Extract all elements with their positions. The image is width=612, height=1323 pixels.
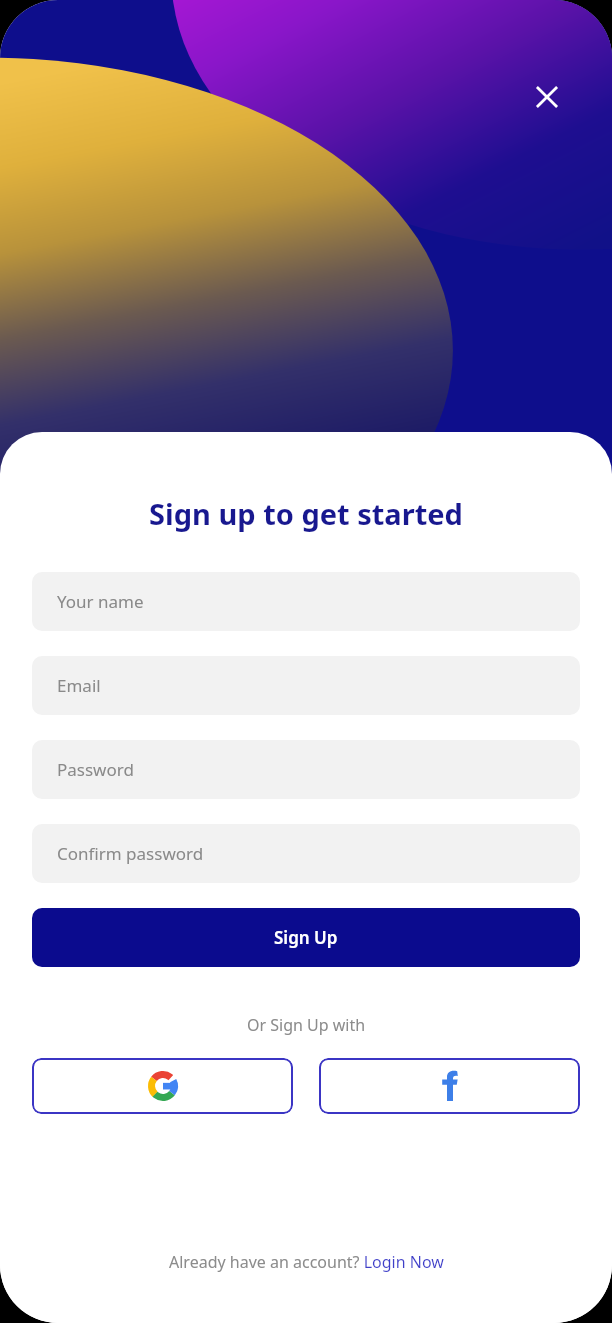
staticText: Already have an account? Login Now bbox=[169, 1251, 444, 1273]
button[interactable]: Sign Up bbox=[32, 908, 580, 967]
button[interactable]: Password bbox=[32, 740, 580, 799]
staticText: Sign Up bbox=[274, 926, 338, 949]
button[interactable]: Email bbox=[32, 656, 580, 715]
staticText: Email bbox=[57, 674, 101, 697]
staticText: Or Sign Up with bbox=[247, 1014, 366, 1036]
button[interactable]: Sign up with Facebook bbox=[319, 1058, 580, 1114]
button[interactable]: Your name bbox=[32, 572, 580, 631]
staticText: Your name bbox=[57, 590, 144, 613]
staticText: Sign up to get started bbox=[149, 494, 463, 533]
button[interactable]: Confirm password bbox=[32, 824, 580, 883]
button[interactable]: Already have an account? Login Now bbox=[161, 1245, 452, 1279]
staticText: Password bbox=[57, 758, 134, 781]
button[interactable]: Sign up with Google bbox=[32, 1058, 293, 1114]
staticText: Confirm password bbox=[57, 842, 204, 865]
button[interactable]: Close bbox=[526, 76, 568, 118]
